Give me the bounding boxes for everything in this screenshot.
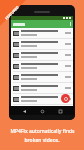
button[interactable]: Back [21, 108, 27, 114]
staticText: FEATURED [4, 4, 20, 21]
button[interactable]: Scan for broken videos [61, 94, 70, 103]
staticText: MP4Fix automatically finds [10, 128, 75, 135]
button[interactable]: Home [39, 108, 45, 114]
button[interactable]: Recent apps [57, 108, 63, 114]
button[interactable]: More options [11, 20, 73, 28]
button[interactable] [11, 72, 73, 83]
button[interactable] [11, 61, 73, 72]
button[interactable] [11, 39, 73, 50]
button[interactable] [11, 28, 73, 39]
button[interactable] [11, 94, 73, 105]
button[interactable] [11, 50, 73, 61]
staticText: broken videos. [24, 137, 60, 144]
button[interactable] [11, 83, 73, 94]
